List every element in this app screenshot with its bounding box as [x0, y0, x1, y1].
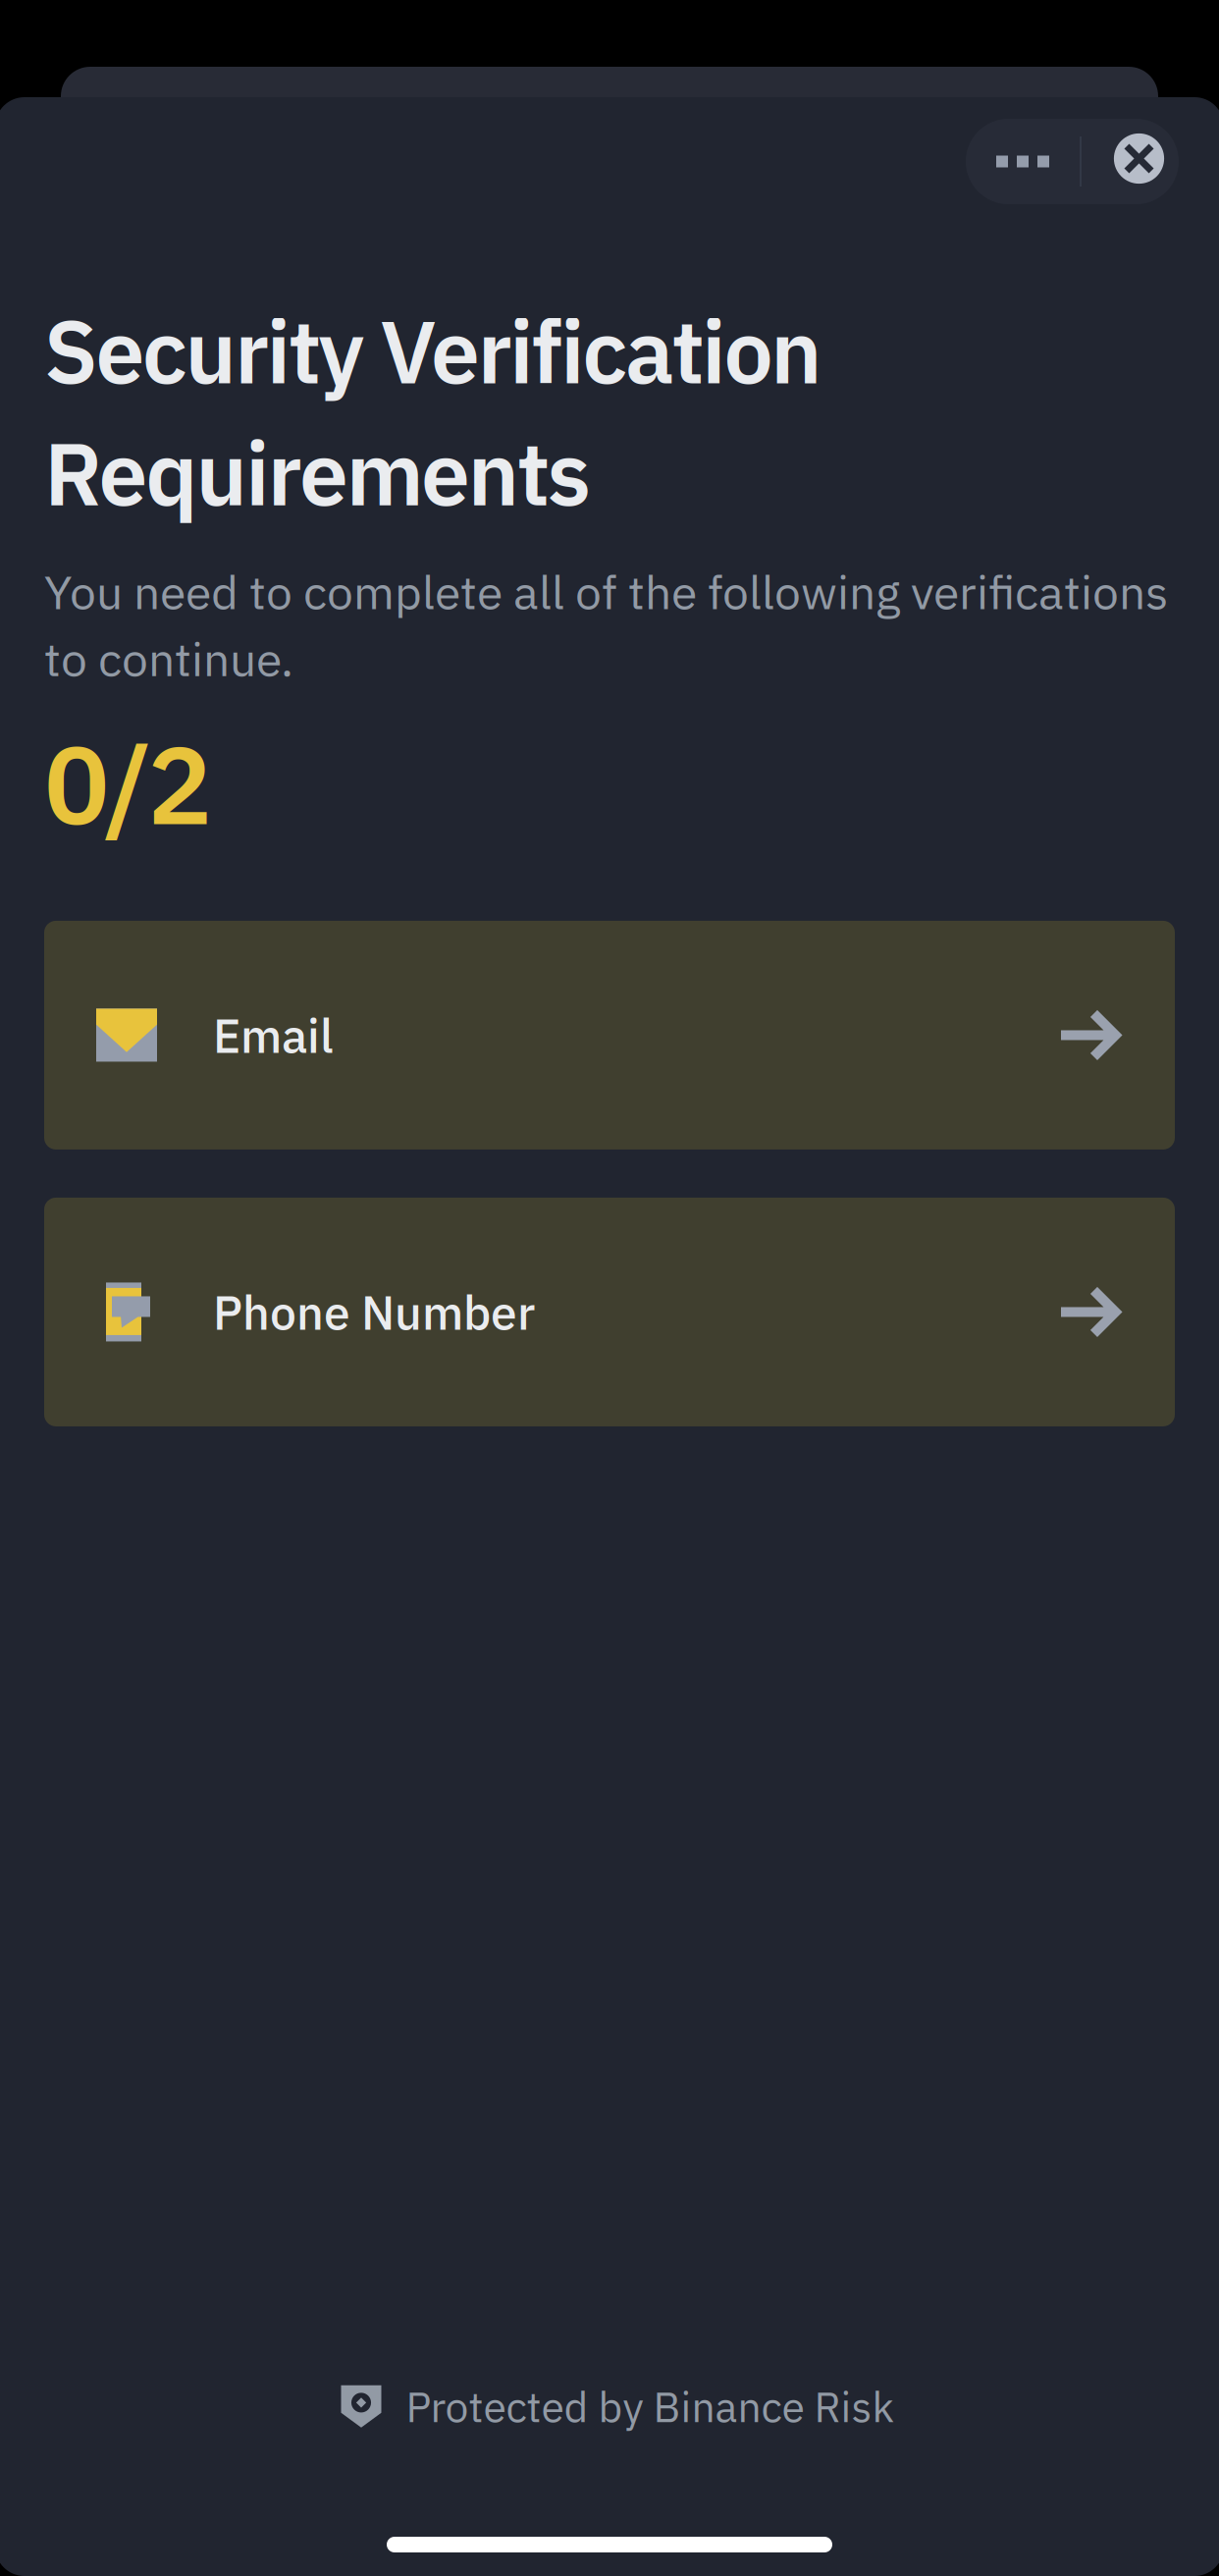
staticText: 0/2 — [44, 713, 212, 854]
staticText: You need to complete all of the followin… — [44, 561, 1168, 689]
staticText: Email — [213, 1004, 334, 1066]
button[interactable]: Close — [1082, 119, 1179, 204]
button[interactable]: Email — [44, 921, 1175, 1149]
button[interactable]: Phone Number — [44, 1198, 1175, 1426]
staticText: Phone Number — [213, 1281, 535, 1343]
staticText: Security Verification Requirements — [44, 294, 822, 529]
staticText: Protected by Binance Risk — [406, 2379, 894, 2434]
button[interactable]: More options — [966, 119, 1080, 204]
